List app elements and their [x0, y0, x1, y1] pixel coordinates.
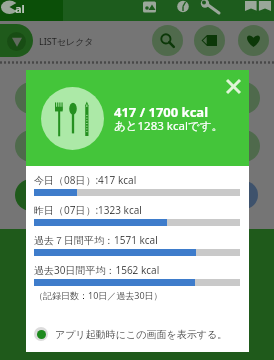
button[interactable]: タグ: [194, 25, 225, 56]
staticText: 過去７日間平均：1571 kcal: [34, 233, 158, 247]
button[interactable]: お気に入り: [238, 25, 269, 56]
button[interactable]: 閉じる: [221, 74, 245, 98]
staticText: あと1283 kcalです。: [114, 118, 223, 134]
button[interactable]: リスト選択: [0, 24, 33, 57]
staticText: 417 / 1700 kcal: [114, 103, 209, 121]
staticText: アプリ起動時にこの画面を表示する。: [55, 328, 228, 341]
staticText: al: [15, 1, 25, 16]
button[interactable]: 検索: [152, 25, 183, 56]
staticText: LISTセレクタ: [39, 35, 94, 47]
button[interactable]: アプリ起動時にこの画面を表示する。: [34, 327, 240, 341]
staticText: 今日（08日）:417 kcal: [34, 173, 137, 187]
staticText: （記録日数：10日／過去30日）: [34, 289, 163, 301]
staticText: 過去30日間平均：1562 kcal: [34, 263, 160, 277]
staticText: 昨日（07日）:1323 kcal: [34, 203, 142, 217]
